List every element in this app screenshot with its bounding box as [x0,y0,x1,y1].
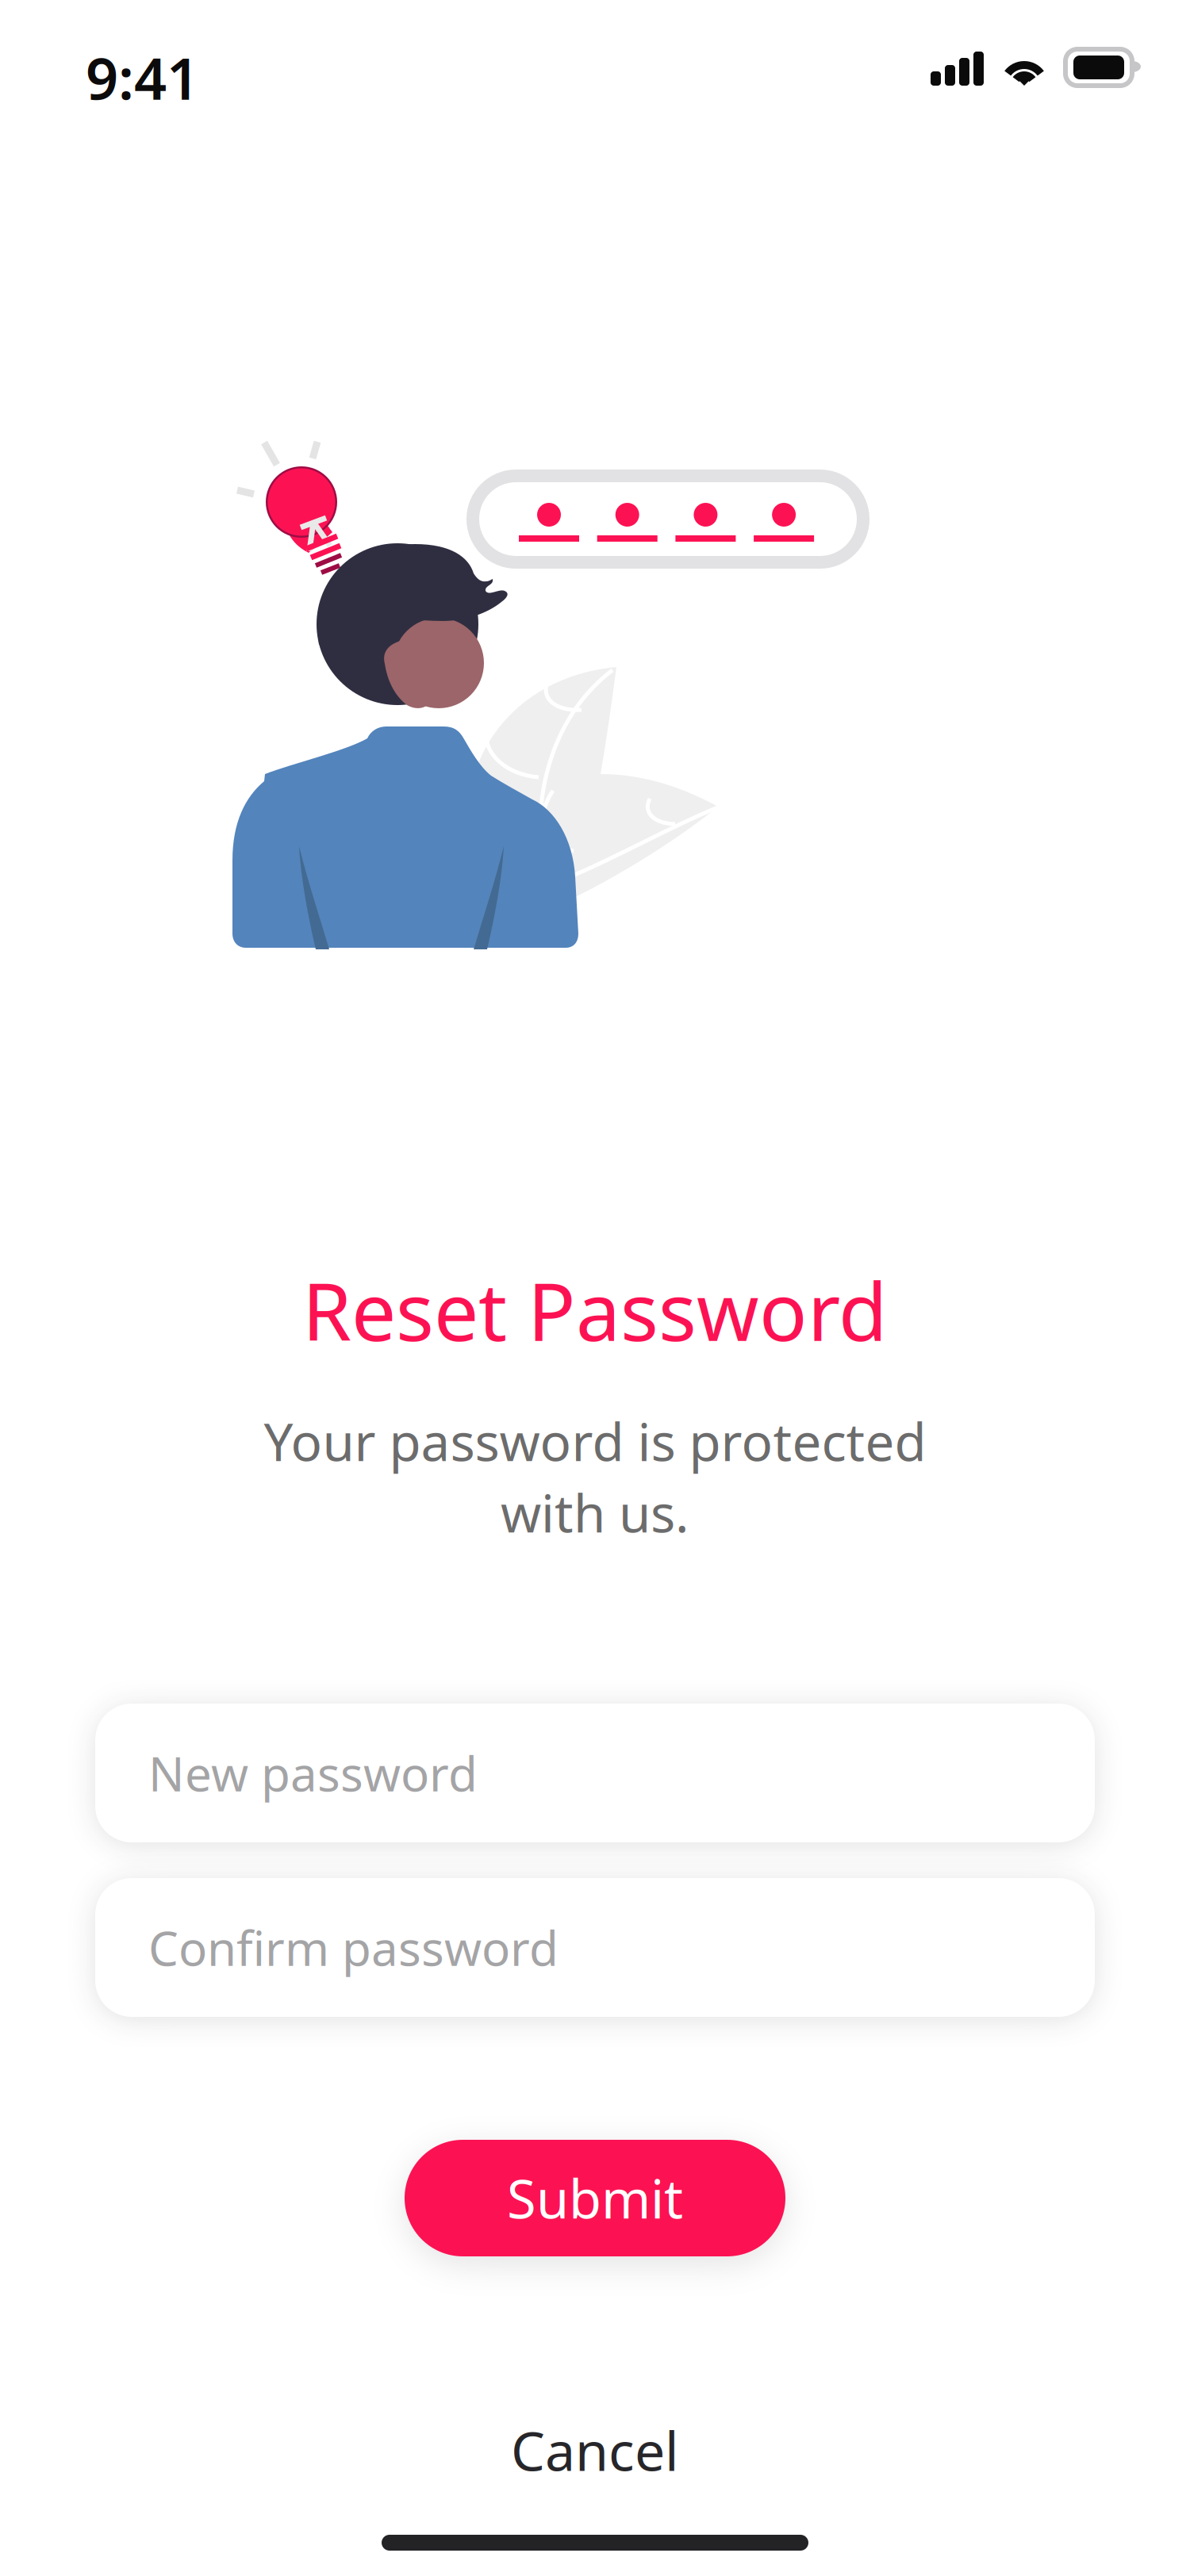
staticText: Reset Password [302,1258,888,1363]
staticText: Your password is protected [264,1407,926,1475]
staticText: with us. [501,1478,689,1547]
staticText: 9:41 [86,40,199,115]
staticText: Confirm password [148,1916,559,1979]
button[interactable]: Submit [405,2140,785,2256]
button[interactable]: Cancel [436,2414,754,2486]
button[interactable]: Confirm password [95,1878,1095,2017]
button[interactable]: New password [95,1704,1095,1842]
staticText: Submit [507,2163,683,2233]
staticText: Cancel [511,2414,679,2486]
staticText: New password [148,1741,478,1805]
